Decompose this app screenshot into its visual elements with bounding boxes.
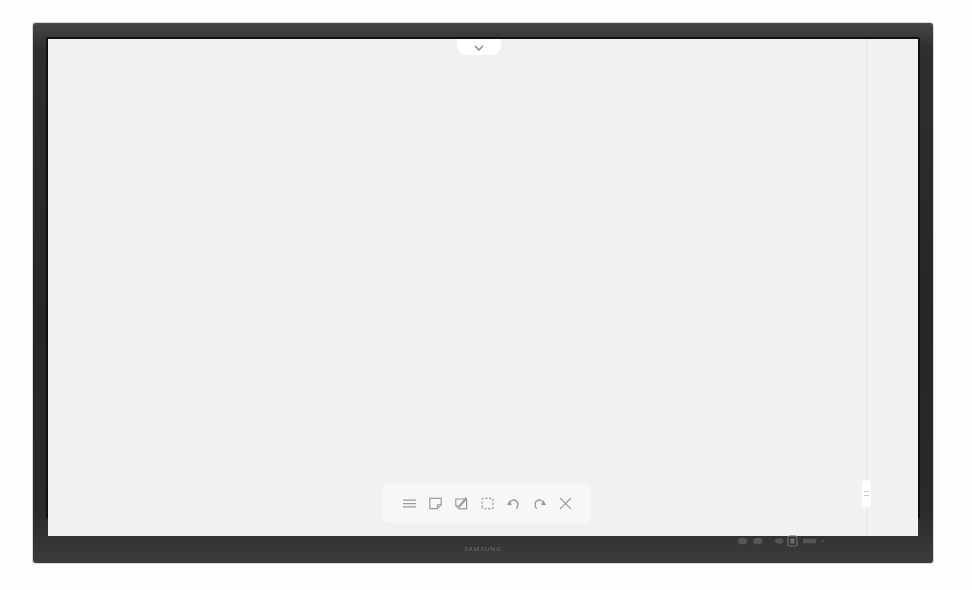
staticText: SAMSUNG <box>464 545 502 553</box>
button[interactable]: Redo <box>526 483 552 523</box>
button[interactable]: Pen <box>448 483 474 523</box>
button[interactable]: Expand menu <box>457 39 501 55</box>
button[interactable]: Resize page <box>862 480 871 507</box>
button[interactable]: Undo <box>500 483 526 523</box>
button[interactable]: Menu <box>396 483 422 523</box>
button[interactable]: Close <box>552 483 578 523</box>
button[interactable]: Shape <box>474 483 500 523</box>
button[interactable]: Note <box>422 483 448 523</box>
